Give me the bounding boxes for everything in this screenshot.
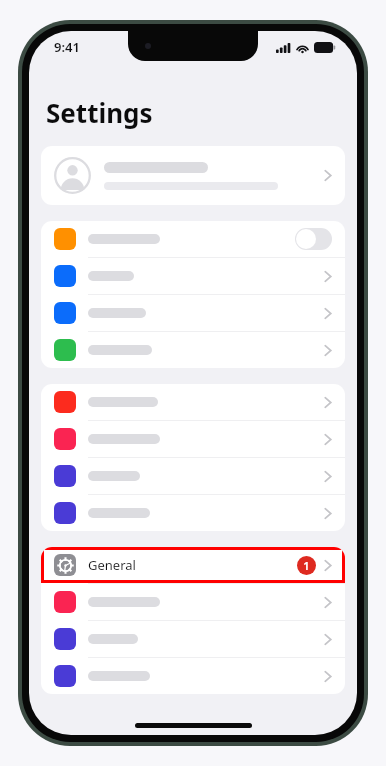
staticText: 1 (303, 558, 310, 573)
button[interactable]: Toggle (295, 228, 332, 250)
button[interactable]: Settings item (41, 658, 345, 694)
button[interactable]: Settings item (41, 332, 345, 368)
button[interactable]: Settings item (41, 458, 345, 494)
button[interactable]: Settings item (41, 621, 345, 657)
button[interactable]: Settings item (41, 495, 345, 531)
button[interactable]: Settings item (41, 258, 345, 294)
button[interactable] (41, 146, 345, 205)
staticText: General (88, 556, 136, 574)
button[interactable]: Settings item (41, 584, 345, 620)
button[interactable]: Settings item (41, 295, 345, 331)
staticText: 9:41 (54, 38, 80, 56)
staticText: Settings (46, 95, 153, 130)
button[interactable]: Settings item (41, 384, 345, 420)
button[interactable]: Settings item (41, 421, 345, 457)
button[interactable]: Settings item with switch (41, 221, 345, 257)
button[interactable]: General (41, 547, 345, 583)
